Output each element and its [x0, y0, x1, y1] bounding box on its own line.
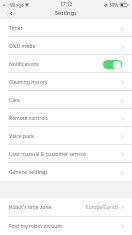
staticText: 39% — [109, 2, 119, 8]
staticText: Robot's time zone — [9, 204, 52, 211]
button[interactable]: DND mode — [0, 37, 132, 55]
button[interactable]: Voice pack — [0, 127, 132, 145]
staticText: Find my robot vacuum — [9, 223, 63, 230]
staticText: General settings — [9, 169, 48, 176]
staticText: Care — [9, 97, 20, 104]
staticText: User manual & customer service — [9, 151, 86, 158]
button[interactable]: Notifications toggle — [103, 60, 122, 69]
button[interactable]: Robot's time zone — [0, 198, 132, 217]
staticText: Remote controls — [9, 115, 48, 122]
staticText: 17:12 — [60, 1, 73, 8]
button[interactable]: User manual & customer service — [0, 145, 132, 163]
button[interactable]: Cleaning history — [0, 73, 132, 91]
staticText: DND mode — [9, 43, 36, 50]
button[interactable]: Remote controls — [0, 109, 132, 127]
staticText: Cleaning history — [9, 79, 48, 86]
button[interactable]: Care — [0, 91, 132, 109]
staticText: Europe/Zurich — [86, 204, 119, 211]
staticText: Timer — [9, 25, 23, 32]
staticText: Wingo — [10, 2, 24, 8]
staticText: Voice pack — [9, 133, 34, 140]
button[interactable]: Timer — [0, 19, 132, 37]
button[interactable]: Notifications — [0, 55, 132, 73]
button[interactable]: Find my robot vacuum — [0, 217, 132, 235]
staticText: Settings — [55, 9, 77, 17]
staticText: Notifications — [9, 61, 40, 68]
button[interactable]: Back — [6, 8, 16, 18]
button[interactable]: General settings — [0, 163, 132, 181]
